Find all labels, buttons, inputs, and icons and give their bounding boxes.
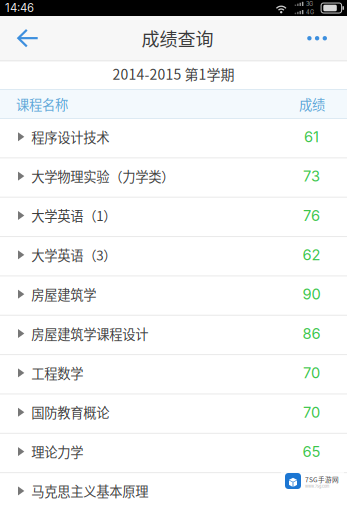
button[interactable]: 马克思主义基本原理	[0, 473, 347, 506]
staticText: 工程数学	[31, 363, 83, 382]
button[interactable]: 理论力学	[0, 434, 347, 473]
button[interactable]: Back	[0, 16, 52, 60]
button[interactable]: 房屋建筑学课程设计	[0, 316, 347, 355]
staticText: 成绩查询	[141, 25, 213, 51]
button[interactable]: More options	[291, 16, 347, 60]
staticText: 成绩	[299, 94, 325, 114]
staticText: 3G	[306, 0, 313, 7]
button[interactable]: 工程数学	[0, 355, 347, 394]
staticText: 86	[302, 325, 320, 342]
staticText: 马克思主义基本原理	[31, 481, 148, 500]
staticText: 65	[302, 443, 320, 460]
staticText: 房屋建筑学课程设计	[31, 324, 148, 343]
staticText: 62	[302, 246, 320, 264]
staticText: 90	[302, 285, 320, 303]
staticText: 理论力学	[31, 442, 83, 461]
staticText: 大学物理实验（力学类）	[31, 166, 174, 186]
button[interactable]: 房屋建筑学	[0, 276, 347, 316]
button[interactable]: 程序设计技术	[0, 119, 347, 158]
staticText: 70	[303, 403, 320, 421]
staticText: 7SG手游网	[305, 474, 339, 484]
staticText: 61	[304, 128, 319, 146]
button[interactable]: 大学英语（3）	[0, 237, 347, 276]
staticText: 70	[303, 364, 320, 382]
staticText: 国防教育概论	[31, 402, 109, 422]
staticText: 程序设计技术	[31, 127, 109, 146]
staticText: 2014-2015 第1学期	[112, 63, 234, 84]
staticText: www.7sg.com	[305, 484, 329, 489]
staticText: 房屋建筑学	[31, 284, 96, 304]
button[interactable]: 大学物理实验（力学类）	[0, 158, 347, 198]
staticText: 大学英语（3）	[31, 245, 116, 264]
staticText: 14:46	[5, 1, 34, 15]
staticText: 大学英语（1）	[31, 206, 116, 225]
staticText: 73	[303, 167, 320, 185]
button[interactable]: 国防教育概论	[0, 394, 347, 434]
staticText: 课程名称	[16, 94, 68, 114]
staticText: 4G	[306, 9, 314, 15]
staticText: 76	[303, 207, 320, 224]
button[interactable]: 大学英语（1）	[0, 198, 347, 237]
